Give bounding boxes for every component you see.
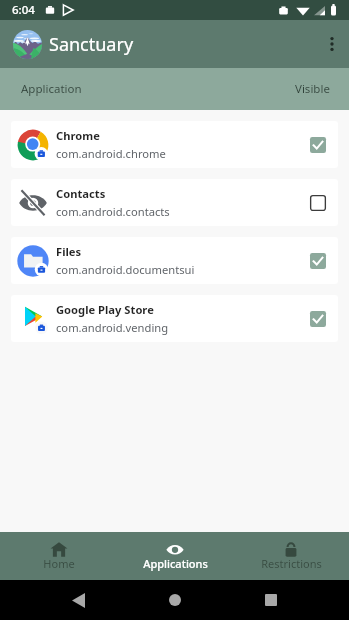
button[interactable]: Hidden xyxy=(304,189,332,217)
button[interactable]: Visible xyxy=(304,305,332,333)
button[interactable]: Recents xyxy=(251,580,291,620)
staticText: com.android.documentsui xyxy=(56,262,195,277)
staticText: Google Play Store xyxy=(56,302,154,317)
button[interactable]: More options xyxy=(312,24,349,64)
button[interactable]: Applications xyxy=(117,532,233,580)
staticText: Home xyxy=(43,556,75,571)
staticText: com.android.chrome xyxy=(56,146,166,161)
button[interactable]: Home xyxy=(0,532,117,580)
button[interactable]: Google Play Store xyxy=(11,295,338,342)
staticText: com.android.vending xyxy=(56,320,169,335)
staticText: Restrictions xyxy=(261,556,322,571)
staticText: Chrome xyxy=(56,128,100,143)
button[interactable]: Contacts xyxy=(11,179,338,226)
button[interactable]: Chrome xyxy=(11,121,338,168)
button[interactable]: Visible xyxy=(304,247,332,275)
staticText: Sanctuary xyxy=(49,32,134,57)
staticText: 6:04 xyxy=(12,2,35,18)
button[interactable]: Visible xyxy=(304,131,332,159)
staticText: Applications xyxy=(143,556,208,571)
button[interactable]: Back xyxy=(58,580,98,620)
staticText: com.android.contacts xyxy=(56,204,170,219)
staticText: Contacts xyxy=(56,186,106,201)
staticText: Files xyxy=(56,244,82,259)
button[interactable]: Home xyxy=(155,580,195,620)
staticText: Application xyxy=(21,81,82,97)
button[interactable]: Restrictions xyxy=(233,532,349,580)
button[interactable]: Files xyxy=(11,237,338,284)
staticText: Visible xyxy=(295,81,330,97)
